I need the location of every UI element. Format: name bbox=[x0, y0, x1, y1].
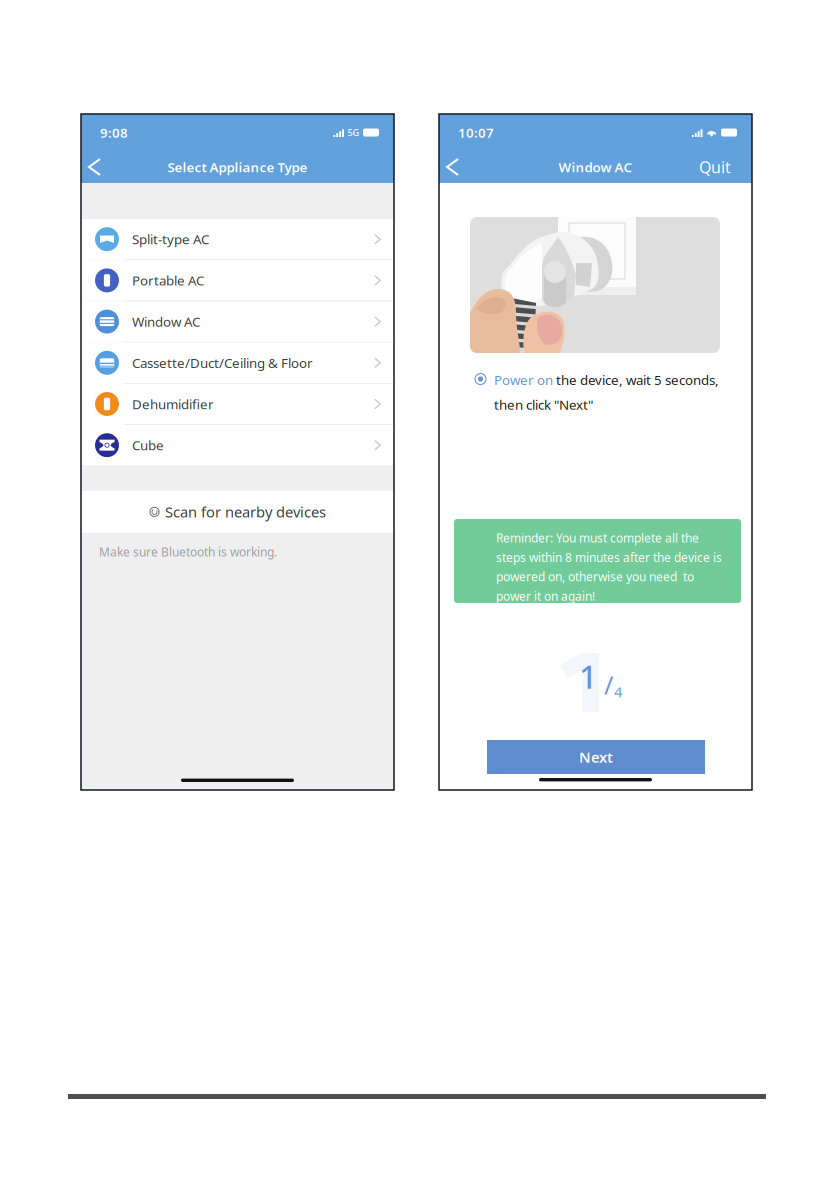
staticText: Power on bbox=[494, 371, 553, 389]
staticText: Window AC bbox=[132, 313, 200, 330]
staticText: Cassette/Duct/Ceiling & Floor bbox=[132, 354, 313, 372]
staticText: Portable AC bbox=[132, 271, 204, 289]
button[interactable]: Scan for nearby devices bbox=[81, 491, 394, 533]
staticText: 1 bbox=[579, 655, 597, 697]
button[interactable]: Portable AC bbox=[81, 260, 394, 301]
staticText: the device, wait 5 seconds, bbox=[553, 371, 719, 389]
staticText: Split-type AC bbox=[132, 230, 209, 248]
staticText: Quit bbox=[699, 156, 731, 178]
staticText: 4 bbox=[614, 682, 622, 701]
button[interactable]: Split-type AC bbox=[81, 219, 394, 259]
staticText: 9:08 bbox=[100, 124, 128, 141]
button[interactable]: Cube bbox=[81, 425, 394, 465]
staticText: 10:07 bbox=[458, 124, 494, 141]
staticText: / bbox=[604, 668, 613, 701]
staticText: then click "Next" bbox=[494, 396, 593, 413]
staticText: Cube bbox=[132, 436, 164, 454]
button[interactable]: Dehumidifier bbox=[81, 384, 394, 424]
button[interactable]: Window AC bbox=[81, 301, 394, 342]
button[interactable]: Back bbox=[439, 151, 473, 183]
button[interactable]: Quit bbox=[699, 151, 752, 183]
staticText: Next bbox=[579, 747, 613, 767]
button[interactable]: Back bbox=[81, 151, 115, 183]
button[interactable]: Next bbox=[487, 740, 705, 774]
staticText: Scan for nearby devices bbox=[165, 502, 326, 522]
staticText: Dehumidifier bbox=[132, 395, 214, 413]
button[interactable]: Cassette/Duct/Ceiling & Floor bbox=[81, 343, 394, 383]
staticText: Make sure Bluetooth is working. bbox=[99, 544, 277, 560]
staticText: Window AC bbox=[558, 158, 632, 176]
staticText: 5G bbox=[347, 126, 359, 139]
staticText: Select Appliance Type bbox=[167, 158, 307, 176]
staticText: Reminder: You must complete all the step… bbox=[496, 530, 722, 604]
